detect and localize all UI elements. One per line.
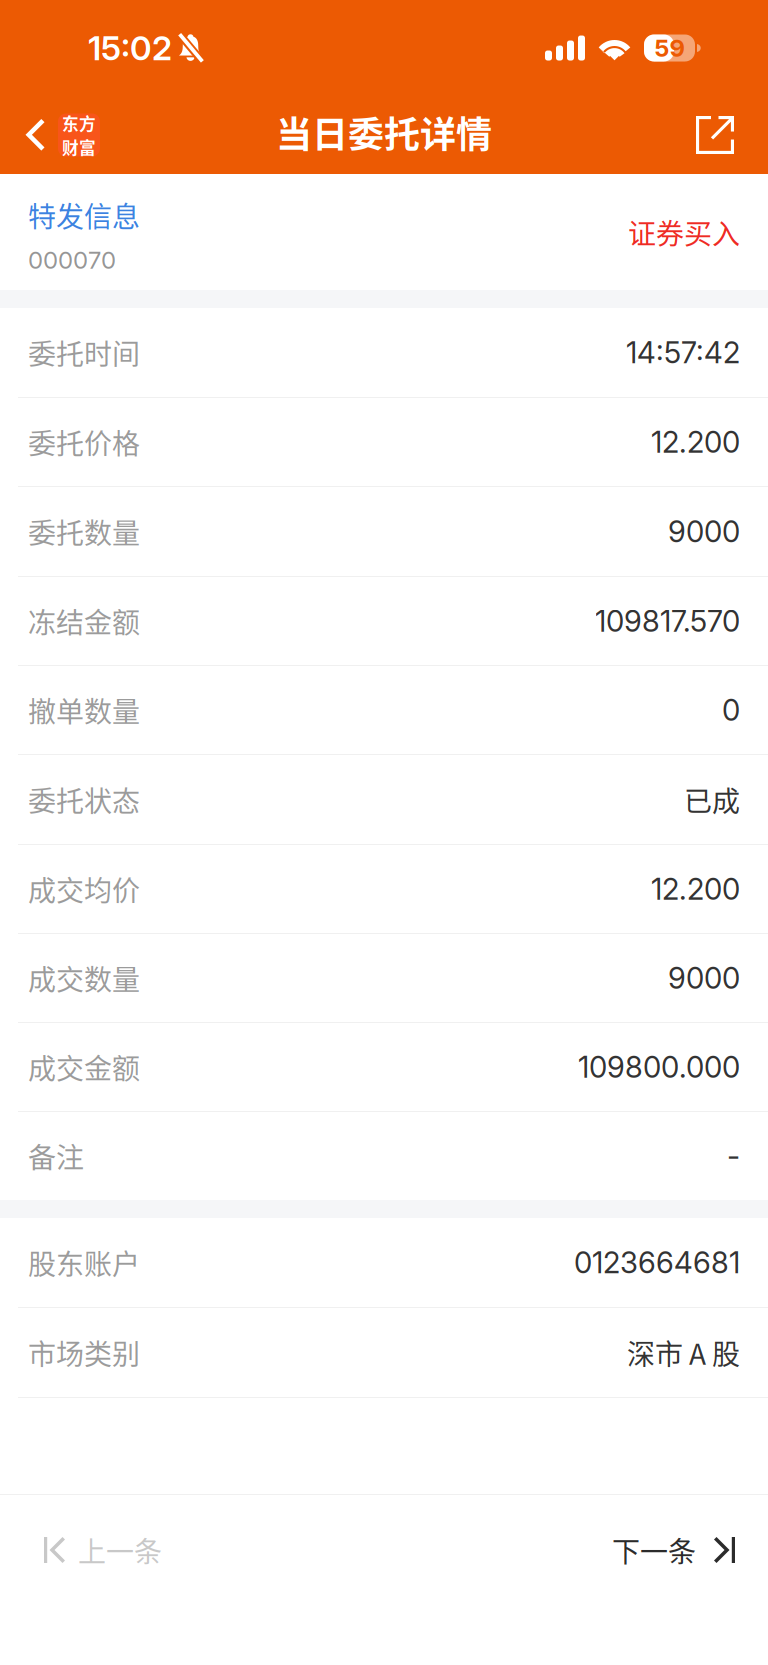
- staticText: 备注: [28, 1136, 84, 1176]
- staticText: 12.200: [651, 424, 740, 460]
- staticText: -: [727, 1138, 740, 1174]
- staticText: 0: [722, 692, 740, 728]
- staticText: 特发信息: [28, 195, 140, 235]
- staticText: 109817.570: [595, 603, 740, 639]
- staticText: 0123664681: [574, 1245, 740, 1280]
- staticText: 委托状态: [28, 779, 140, 820]
- staticText: 冻结金额: [28, 601, 140, 641]
- staticText: 15:02: [88, 28, 172, 68]
- staticText: 9000: [668, 514, 740, 549]
- staticText: 市场类别: [28, 1332, 140, 1373]
- staticText: 深市 A 股: [627, 1332, 740, 1373]
- staticText: 上一条: [78, 1530, 162, 1570]
- button[interactable]: 返回: [0, 96, 114, 174]
- staticText: 成交均价: [28, 869, 140, 909]
- staticText: 股东账户: [28, 1242, 140, 1283]
- staticText: 000070: [28, 245, 116, 274]
- staticText: 已成: [684, 779, 740, 820]
- staticText: 109800.000: [578, 1049, 740, 1085]
- staticText: 成交金额: [28, 1047, 140, 1087]
- staticText: 59: [654, 33, 684, 62]
- button[interactable]: 下一条: [588, 1495, 768, 1605]
- staticText: 委托价格: [28, 422, 140, 462]
- staticText: 下一条: [612, 1530, 696, 1570]
- staticText: 成交数量: [28, 958, 140, 998]
- staticText: 12.200: [651, 871, 740, 907]
- staticText: 委托数量: [28, 511, 140, 552]
- staticText: 当日委托详情: [276, 106, 492, 158]
- staticText: 财富: [62, 135, 96, 159]
- staticText: 9000: [668, 960, 740, 996]
- staticText: 撤单数量: [28, 690, 140, 730]
- staticText: 东方: [62, 111, 96, 135]
- staticText: 委托时间: [28, 332, 140, 373]
- button[interactable]: 上一条: [0, 1495, 186, 1605]
- staticText: 证券买入: [628, 212, 740, 252]
- button[interactable]: 分享: [676, 96, 768, 174]
- staticText: 14:57:42: [626, 335, 740, 370]
